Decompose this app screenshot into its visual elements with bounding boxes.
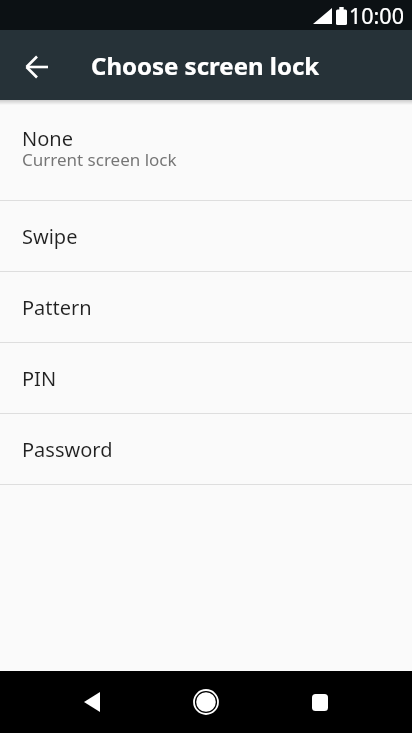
staticText: 10:00 bbox=[349, 1, 404, 30]
button[interactable] bbox=[285, 671, 355, 733]
staticText: Choose screen lock bbox=[91, 49, 320, 82]
staticText: Swipe bbox=[22, 223, 78, 250]
staticText: Password bbox=[22, 436, 113, 463]
button[interactable]: Pattern bbox=[0, 272, 412, 342]
button[interactable] bbox=[15, 43, 59, 87]
button[interactable] bbox=[57, 671, 127, 733]
button[interactable]: Password bbox=[0, 414, 412, 484]
staticText: Current screen lock bbox=[22, 148, 177, 171]
staticText: None bbox=[22, 125, 73, 152]
staticText: Pattern bbox=[22, 294, 92, 321]
button[interactable] bbox=[171, 671, 241, 733]
button[interactable]: None bbox=[0, 100, 412, 200]
button[interactable]: Swipe bbox=[0, 201, 412, 271]
staticText: PIN bbox=[22, 365, 57, 392]
button[interactable]: PIN bbox=[0, 343, 412, 413]
